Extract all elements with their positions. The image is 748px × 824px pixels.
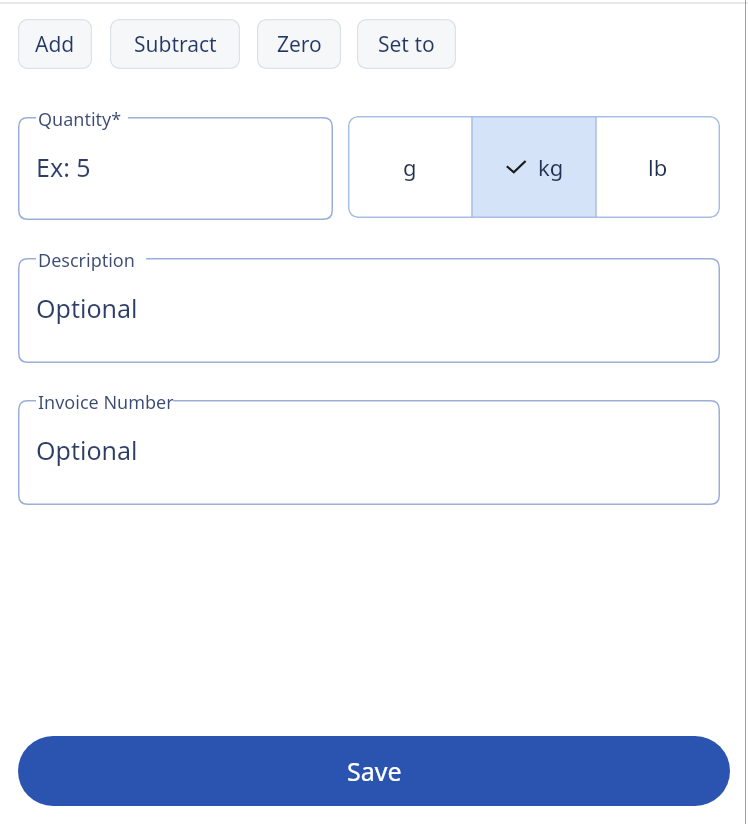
button[interactable]: Add bbox=[18, 19, 92, 69]
button[interactable]: Quantity* bbox=[18, 117, 333, 220]
staticText: Save bbox=[347, 754, 402, 788]
staticText: Subtract bbox=[134, 30, 217, 59]
staticText: Set to bbox=[378, 30, 435, 59]
staticText: Description bbox=[38, 248, 135, 273]
button[interactable]: Subtract bbox=[110, 19, 240, 69]
staticText: Optional bbox=[36, 433, 138, 467]
button[interactable]: lb bbox=[596, 116, 720, 218]
button[interactable]: Set to bbox=[357, 19, 456, 69]
button[interactable]: Zero bbox=[257, 19, 341, 69]
staticText: Add bbox=[35, 30, 75, 59]
button[interactable]: Invoice Number bbox=[18, 400, 720, 505]
button[interactable]: Description bbox=[18, 258, 720, 363]
staticText: Quantity* bbox=[38, 107, 122, 132]
button[interactable]: g bbox=[348, 116, 472, 218]
staticText: lb bbox=[648, 152, 668, 182]
staticText: Ex: 5 bbox=[36, 150, 91, 184]
staticText: Optional bbox=[36, 291, 138, 325]
button[interactable]: kg bbox=[472, 116, 596, 218]
button[interactable]: Save bbox=[18, 736, 730, 806]
staticText: Zero bbox=[277, 30, 322, 59]
staticText: kg bbox=[538, 152, 564, 182]
staticText: Invoice Number bbox=[38, 390, 174, 415]
staticText: g bbox=[403, 152, 417, 182]
